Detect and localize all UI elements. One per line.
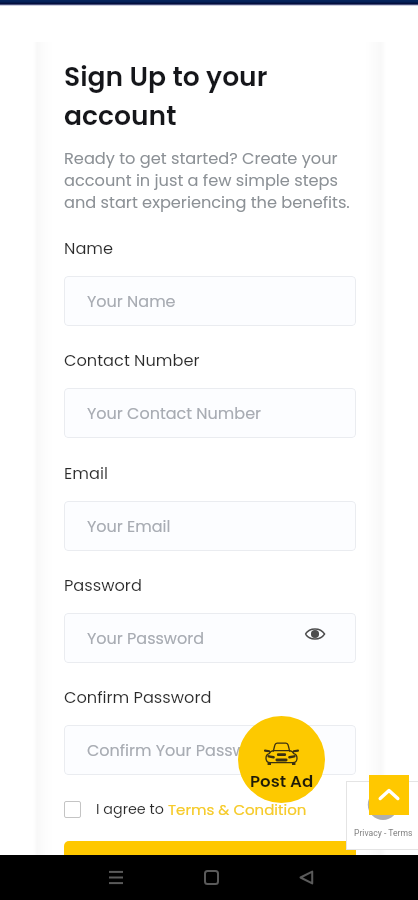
staticText: Your Email <box>87 515 171 537</box>
staticText: Privacy - Terms <box>354 828 413 838</box>
staticText: Name <box>64 237 114 260</box>
staticText: Your Password <box>87 627 204 649</box>
staticText: Terms & Condition <box>168 799 307 820</box>
staticText: Confirm Password <box>64 686 212 709</box>
button[interactable]: Agree to terms and conditions <box>64 801 81 818</box>
button[interactable]: Scroll to top <box>369 775 409 815</box>
button[interactable]: Sign Up <box>64 841 356 881</box>
staticText: Ready to get started? Create your accoun… <box>64 147 354 214</box>
staticText: Sign Up to your account <box>64 58 364 134</box>
button[interactable]: Your Email <box>64 501 356 551</box>
button[interactable]: Show password <box>302 621 328 647</box>
staticText: Email <box>64 462 108 485</box>
staticText: Password <box>64 574 142 597</box>
staticText: Sign Up <box>179 850 241 872</box>
staticText: Confirm Your Password <box>87 739 273 761</box>
button[interactable]: Your Password <box>64 613 356 663</box>
button[interactable]: Your Name <box>64 276 356 326</box>
button[interactable]: Back <box>300 871 313 884</box>
staticText: Contact Number <box>64 349 200 372</box>
staticText: Your Contact Number <box>87 402 262 424</box>
staticText: Post Ad <box>250 770 314 793</box>
button[interactable]: I agree to <box>96 799 307 820</box>
button[interactable]: Confirm Your Password <box>64 725 356 775</box>
button[interactable]: Your Contact Number <box>64 388 356 438</box>
staticText: I agree to <box>96 799 168 819</box>
button[interactable]: Post Ad <box>238 716 325 803</box>
button[interactable]: Home <box>205 871 218 884</box>
button[interactable]: reCAPTCHA <box>346 781 418 850</box>
button[interactable]: Recent apps <box>109 871 123 884</box>
staticText: Your Name <box>87 290 176 312</box>
